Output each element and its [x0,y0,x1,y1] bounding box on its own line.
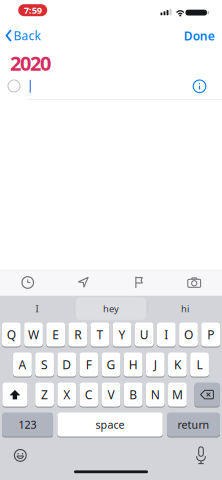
button[interactable]: N [146,382,165,407]
staticText: Back [13,28,40,43]
staticText: P [207,326,214,342]
button[interactable] [181,270,207,295]
staticText: hey [103,302,119,315]
button[interactable]: I [1,296,73,322]
staticText: O [184,326,193,342]
staticText: K [174,356,181,372]
button[interactable]: D [57,352,76,377]
button[interactable]: V [102,382,120,407]
button[interactable]: space [57,412,163,437]
button[interactable] [8,80,20,92]
button[interactable]: I [157,322,176,347]
button[interactable]: K [168,352,187,377]
button[interactable]: G [102,352,120,377]
button[interactable]: M [168,382,187,407]
staticText: return [177,417,209,432]
staticText: G [106,356,115,372]
button[interactable]: hi [149,296,221,322]
button[interactable]: R [68,322,87,347]
staticText: space [95,417,124,432]
button[interactable]: O [179,322,198,347]
staticText: I [164,326,168,342]
button[interactable]: Y [113,322,131,347]
staticText: L [197,356,203,372]
button[interactable]: Done [184,28,215,44]
staticText: T [96,326,103,342]
staticText: Q [7,326,16,342]
staticText: F [86,356,92,372]
button[interactable]: H [124,352,142,377]
button[interactable]: W [24,322,43,347]
button[interactable]: B [124,382,142,407]
button[interactable] [15,270,41,295]
button[interactable]: U [135,322,153,347]
staticText: 7:59 [24,4,42,16]
button[interactable]: Q [2,322,21,347]
button[interactable]: P [201,322,220,347]
staticText: U [140,326,149,342]
button[interactable]: Back [5,28,40,43]
staticText: I [35,302,38,315]
staticText: Z [41,387,48,402]
staticText: C [85,387,93,402]
button[interactable] [189,445,213,469]
staticText: B [129,387,137,402]
staticText: J [154,356,157,372]
staticText: hi [181,302,189,315]
button[interactable] [194,382,220,407]
staticText: D [62,356,71,372]
button[interactable]: A [13,352,32,377]
button[interactable]: hey [75,296,147,322]
button[interactable]: 123 [2,412,53,437]
staticText: X [63,387,70,402]
staticText: M [172,387,183,402]
staticText: Y [119,326,126,342]
button[interactable] [126,270,152,295]
staticText: R [74,326,81,342]
button[interactable]: E [46,322,65,347]
button[interactable]: X [57,382,76,407]
button[interactable]: 7:59 [18,4,47,16]
staticText: N [151,387,160,402]
button[interactable]: S [35,352,54,377]
button[interactable]: Z [35,382,54,407]
button[interactable] [70,270,96,295]
button[interactable]: T [91,322,109,347]
staticText: E [52,326,59,342]
button[interactable]: return [167,412,220,437]
button[interactable]: F [79,352,98,377]
button[interactable]: C [79,382,98,407]
button[interactable] [8,443,32,467]
button[interactable]: J [146,352,165,377]
button[interactable] [2,382,27,407]
button[interactable]: L [190,352,209,377]
staticText: H [129,356,138,372]
staticText: 2020 [10,50,51,76]
staticText: Done [184,28,215,44]
staticText: S [41,356,48,372]
button[interactable] [193,80,206,93]
staticText: W [28,326,39,342]
staticText: 123 [18,417,36,432]
staticText: V [107,387,114,402]
staticText: A [18,356,26,372]
